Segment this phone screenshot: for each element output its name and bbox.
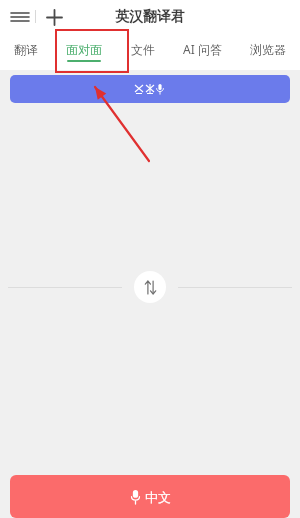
button[interactable]: 翻译 <box>10 40 42 64</box>
staticText: 翻译 <box>14 42 38 57</box>
staticText: 面对面 <box>66 42 102 57</box>
staticText: 浏览器 <box>250 42 286 57</box>
staticText: 中文 <box>145 489 171 505</box>
staticText: AI 问答 <box>183 41 222 57</box>
button[interactable]: 文件 <box>127 40 159 64</box>
staticText: 英汉翻译君 <box>115 8 185 26</box>
staticText: 文件 <box>131 42 155 57</box>
button[interactable]: Swap languages <box>134 271 166 303</box>
button[interactable]: English speech input <box>10 75 290 103</box>
button[interactable]: Menu <box>6 3 34 31</box>
button[interactable]: 中文 <box>10 475 290 518</box>
button[interactable]: 面对面 <box>62 40 106 64</box>
button[interactable]: AI 问答 <box>179 39 226 64</box>
button[interactable]: 浏览器 <box>246 40 290 64</box>
button[interactable]: Add <box>41 4 67 30</box>
